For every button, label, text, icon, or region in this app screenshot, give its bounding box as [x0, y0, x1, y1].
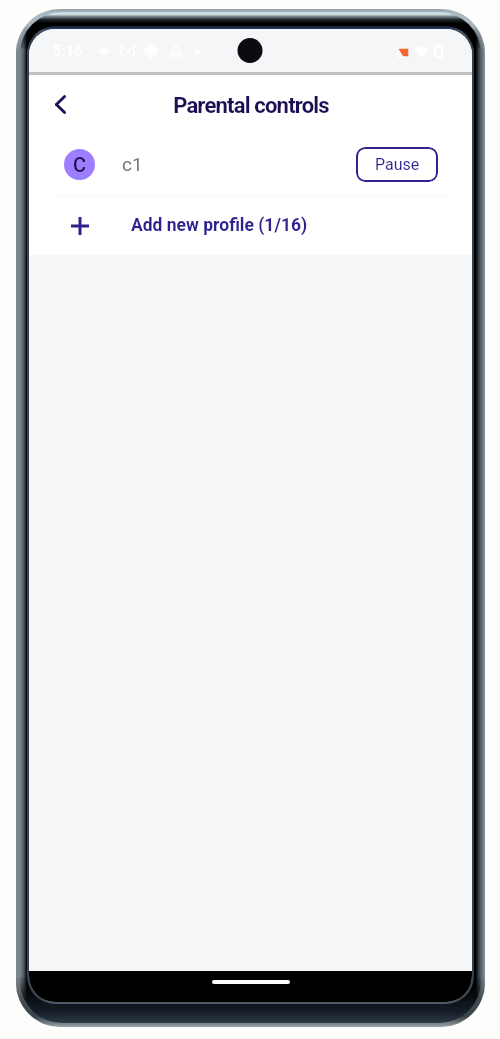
staticText: Pause: [375, 155, 420, 174]
staticText: C: [73, 153, 87, 176]
button[interactable]: Add new profile (1/16): [29, 196, 472, 255]
staticText: c1: [122, 153, 143, 175]
button[interactable]: Back: [40, 84, 80, 124]
staticText: 5:16: [53, 42, 83, 60]
staticText: Parental controls: [173, 93, 329, 119]
button[interactable]: C: [29, 133, 472, 195]
button[interactable]: Pause: [356, 147, 438, 182]
staticText: Add new profile (1/16): [131, 215, 308, 236]
